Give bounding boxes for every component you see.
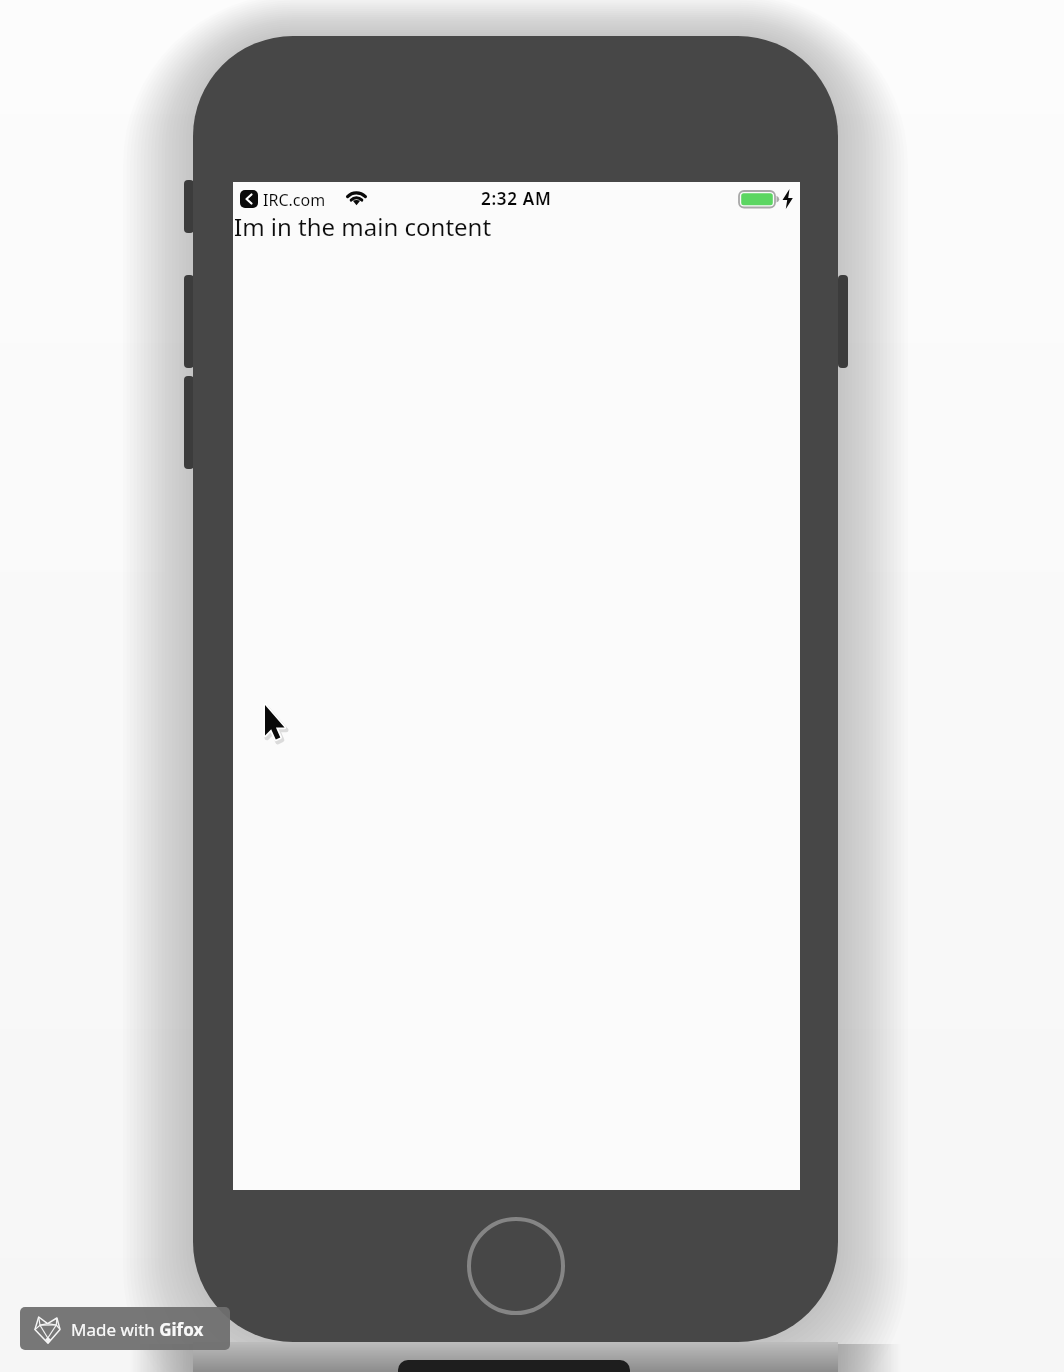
- staticText: Im in the main content: [234, 210, 492, 243]
- staticText: IRC.com: [263, 189, 326, 211]
- staticText: 2:32 AM: [481, 187, 552, 210]
- staticText: Made with Gifox: [71, 1318, 204, 1341]
- button[interactable]: [240, 190, 258, 208]
- button[interactable]: Made with Gifox: [20, 1307, 230, 1350]
